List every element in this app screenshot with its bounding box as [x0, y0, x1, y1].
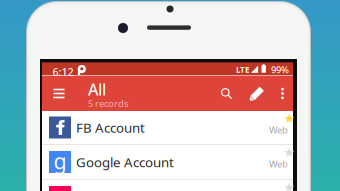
staticText: Web — [269, 124, 288, 136]
button[interactable]: Twitter — [42, 180, 293, 191]
staticText: 6:12 — [52, 65, 73, 79]
staticText: 5 records — [88, 97, 128, 109]
button[interactable]: Edit — [244, 76, 270, 111]
button[interactable]: FB Account — [42, 111, 293, 145]
staticText: All — [88, 79, 106, 100]
button[interactable]: Menu — [46, 76, 72, 111]
staticText: g — [53, 147, 66, 175]
staticText: FB Account — [76, 119, 145, 136]
staticText: LTE — [236, 64, 249, 75]
button[interactable]: g — [42, 145, 293, 180]
staticText: Google Account — [76, 153, 174, 171]
staticText: 99% — [271, 63, 289, 76]
button[interactable]: More options — [273, 76, 291, 111]
staticText: Web — [269, 158, 288, 170]
button[interactable]: Search — [213, 76, 239, 111]
